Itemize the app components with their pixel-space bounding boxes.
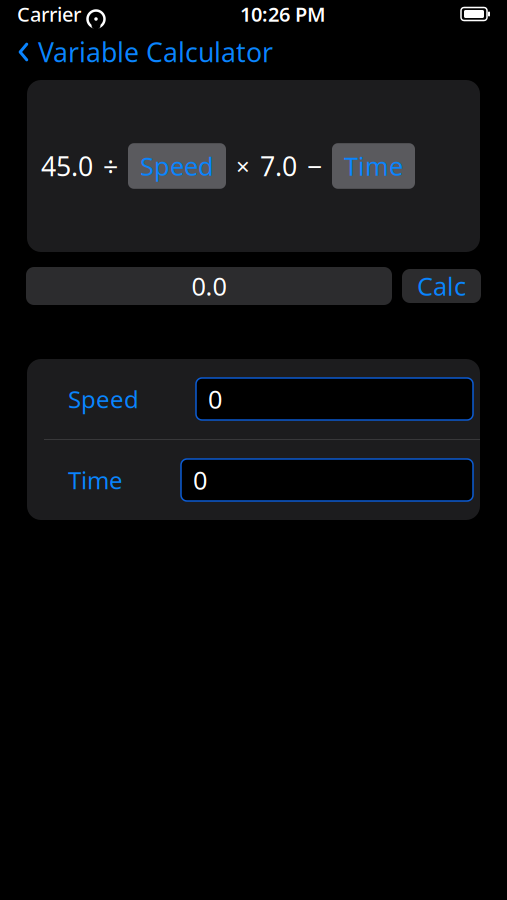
staticText: Speed — [68, 383, 139, 415]
staticText: × — [236, 150, 250, 182]
staticText: 7.0 — [260, 148, 297, 184]
button[interactable]: Calc — [402, 269, 481, 303]
staticText: 0.0 — [191, 269, 226, 303]
staticText: 10:26 PM — [240, 1, 326, 27]
staticText: Time — [344, 149, 403, 183]
button[interactable]: Variable Calculator — [0, 26, 273, 78]
staticText: Variable Calculator — [38, 34, 273, 70]
staticText: ÷ — [103, 148, 118, 184]
staticText: Calc — [417, 269, 466, 303]
button[interactable]: 0 — [196, 378, 473, 420]
staticText: 0 — [208, 382, 222, 416]
button[interactable]: 0 — [181, 459, 473, 501]
staticText: Carrier — [17, 1, 81, 27]
button[interactable]: Time — [332, 143, 415, 189]
staticText: Speed — [140, 149, 214, 183]
staticText: Time — [68, 464, 123, 496]
staticText: 0 — [193, 463, 207, 497]
button[interactable]: Speed — [128, 143, 226, 189]
staticText: 45.0 — [41, 148, 93, 184]
staticText: − — [307, 148, 322, 184]
